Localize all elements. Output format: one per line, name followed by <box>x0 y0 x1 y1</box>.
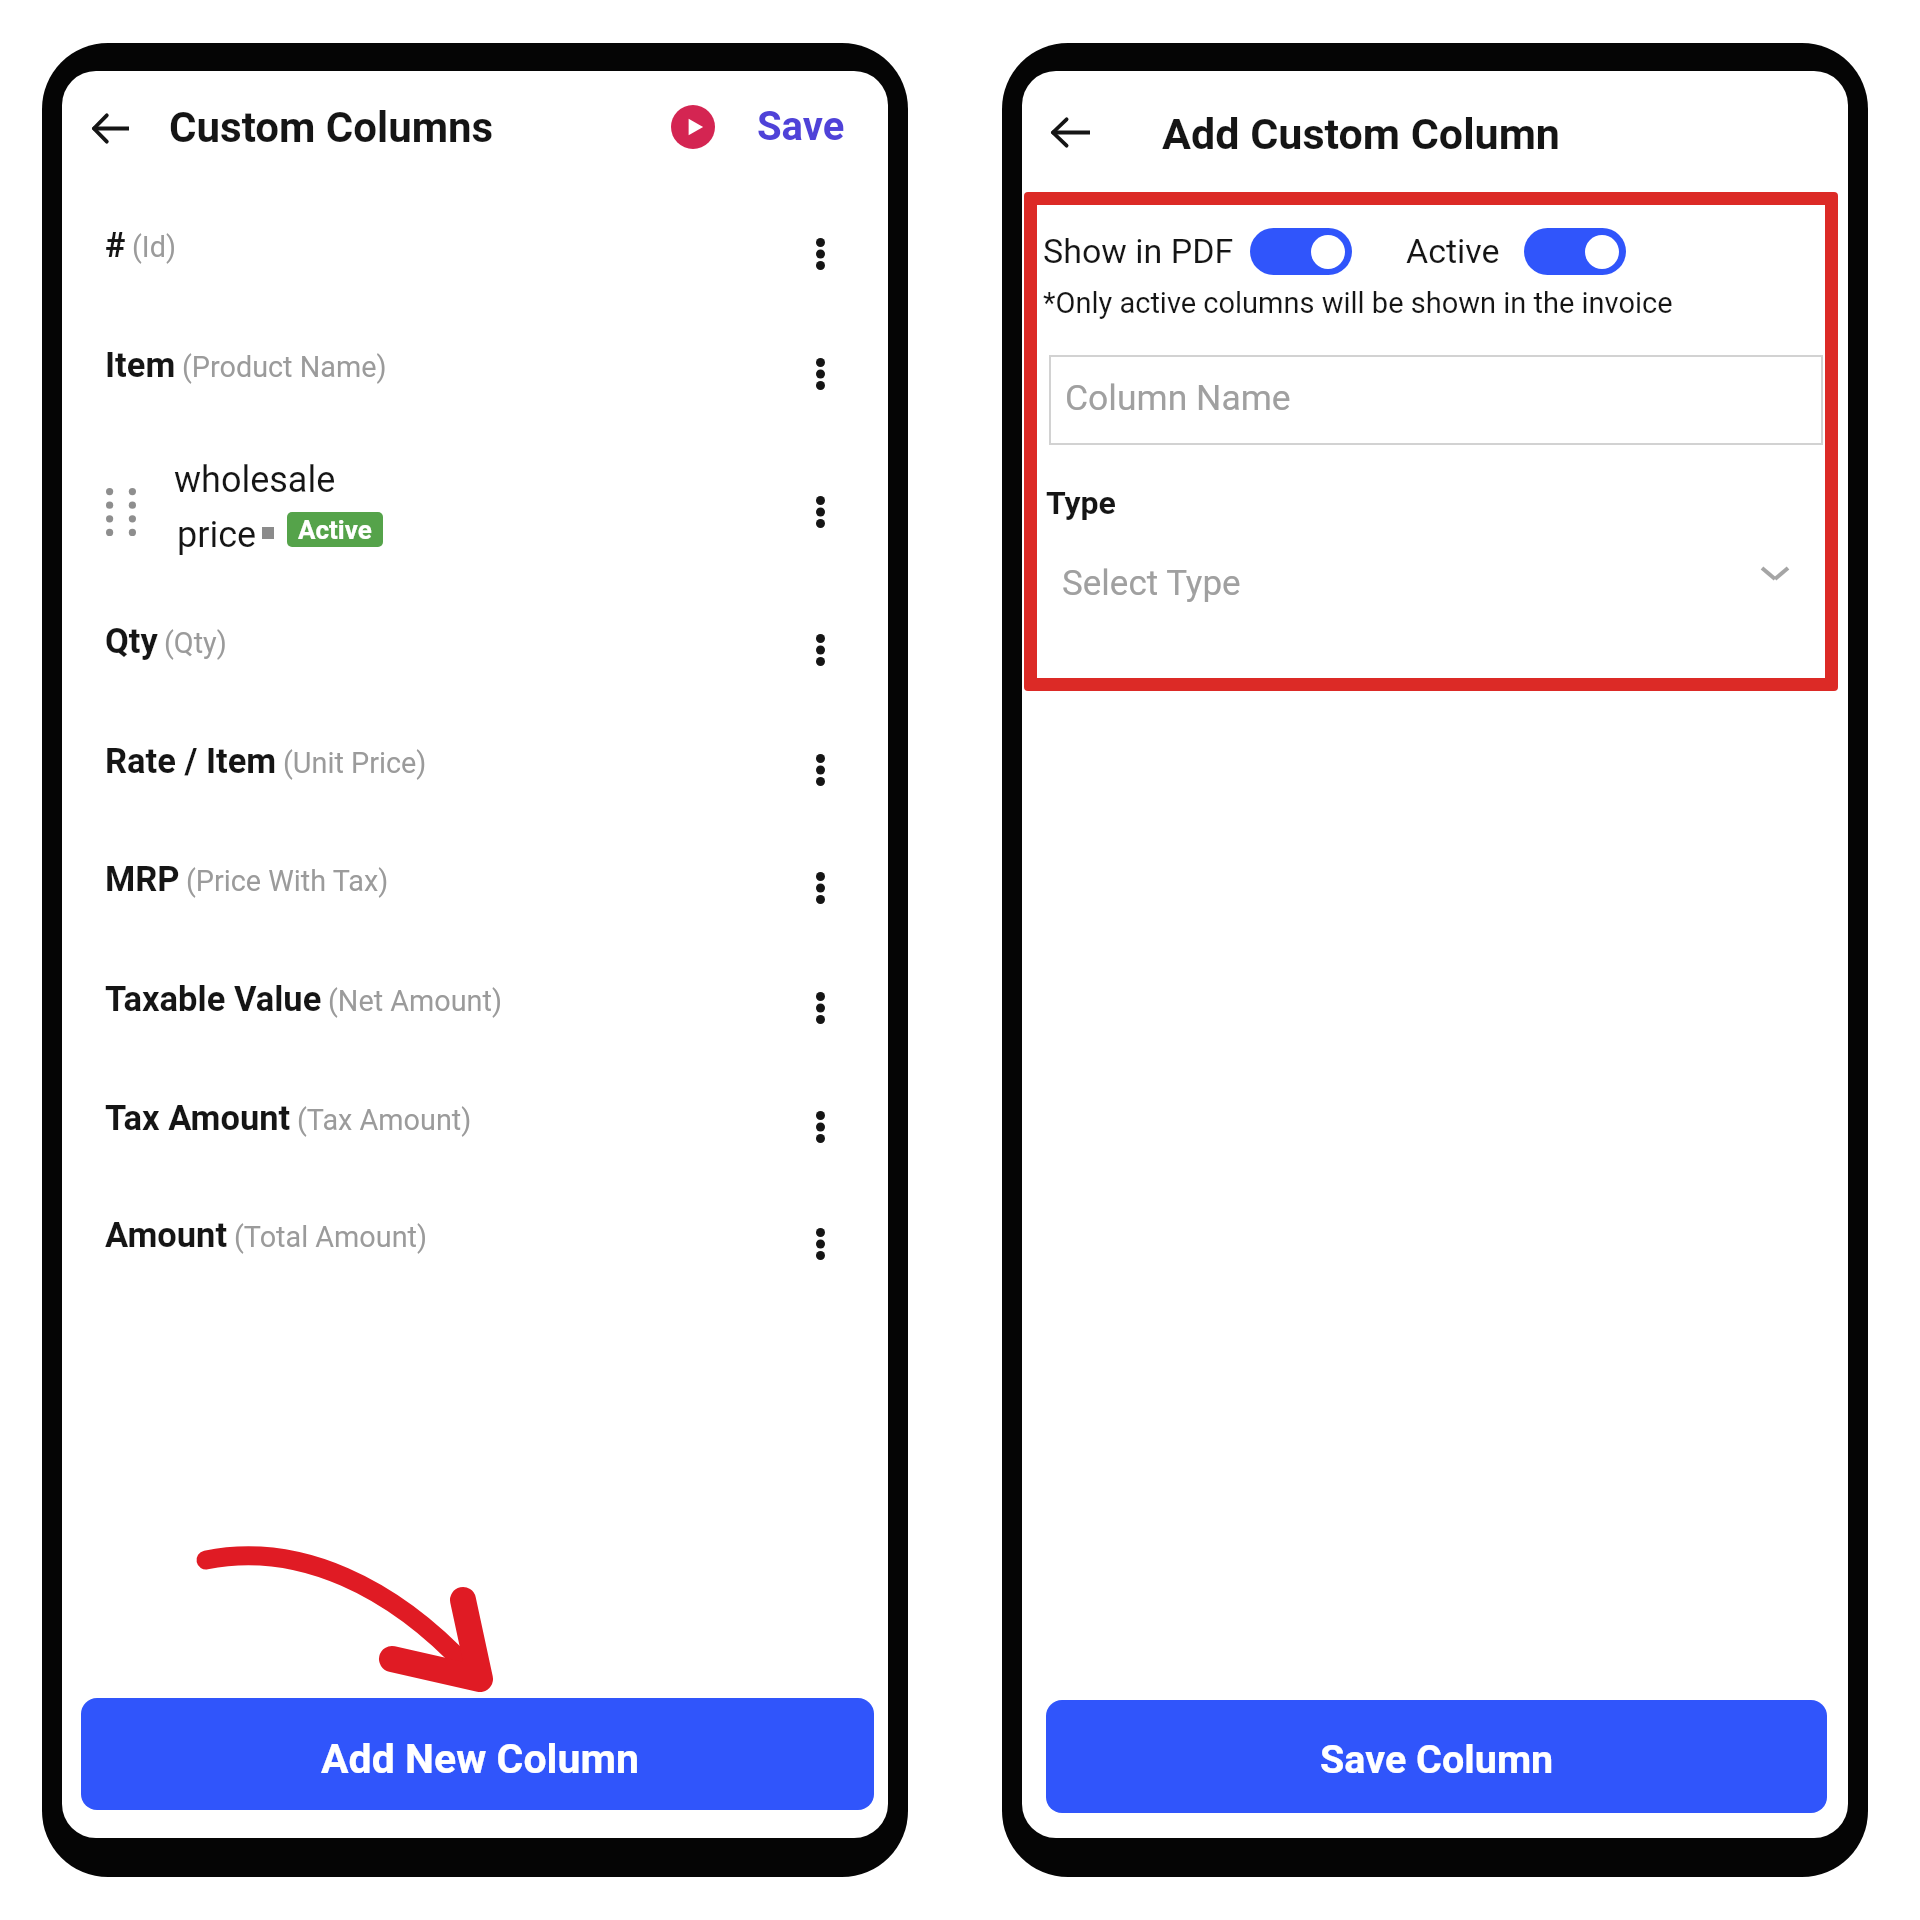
button[interactable]: More options <box>794 218 846 290</box>
button[interactable]: Add New Column <box>81 1698 874 1810</box>
staticText: (Net Amount) <box>328 984 502 1018</box>
button[interactable]: Reorder column <box>62 450 888 570</box>
button[interactable]: More options <box>794 1091 846 1163</box>
button[interactable]: Show in PDF toggle <box>1250 228 1352 275</box>
staticText: Rate / Item <box>105 741 277 781</box>
button[interactable]: Active toggle <box>1524 228 1626 275</box>
staticText: wholesale <box>174 459 336 501</box>
staticText: (Tax Amount) <box>297 1103 472 1137</box>
button[interactable]: Select Type <box>1024 537 1838 607</box>
button[interactable]: Back <box>92 112 129 145</box>
button[interactable]: MRP <box>62 836 888 932</box>
staticText: (Product Name) <box>182 350 387 384</box>
staticText: Save Column <box>1320 1736 1554 1782</box>
staticText: (Qty) <box>164 626 227 660</box>
staticText: *Only active columns will be shown in th… <box>1043 286 1673 320</box>
staticText: Tax Amount <box>105 1098 291 1138</box>
staticText: Custom Columns <box>169 103 494 152</box>
button[interactable]: Back <box>1051 116 1090 149</box>
staticText: Item <box>105 345 176 385</box>
button[interactable]: Save <box>746 86 851 156</box>
button[interactable]: More options <box>794 338 846 410</box>
staticText: (Unit Price) <box>283 746 427 780</box>
button[interactable]: More options <box>794 852 846 924</box>
button[interactable]: Column Name <box>1049 355 1823 445</box>
button[interactable]: Tax Amount <box>62 1075 888 1171</box>
button[interactable]: Amount <box>62 1192 888 1288</box>
staticText: Type <box>1046 484 1116 522</box>
staticText: Add New Column <box>321 1735 639 1783</box>
button[interactable]: More options <box>794 614 846 686</box>
other: Expand type list <box>1762 568 1788 579</box>
staticText: price <box>177 514 257 556</box>
staticText: Qty <box>105 621 158 661</box>
staticText: (Total Amount) <box>234 1220 427 1254</box>
staticText: (Price With Tax) <box>186 864 389 898</box>
staticText: Active <box>298 515 372 545</box>
staticText: Add Custom Column <box>1162 109 1560 159</box>
button[interactable]: Reorder column <box>92 476 150 548</box>
button[interactable]: Rate / Item <box>62 718 888 814</box>
button[interactable]: Item <box>62 322 888 418</box>
button[interactable]: More options <box>794 734 846 806</box>
button[interactable]: Watch tutorial <box>671 105 715 149</box>
staticText: # <box>105 225 126 265</box>
staticText: Save <box>757 103 845 150</box>
button[interactable]: More options <box>794 476 846 548</box>
button[interactable]: Qty <box>62 598 888 694</box>
staticText: Column Name <box>1065 377 1291 419</box>
staticText: Active <box>1406 231 1500 271</box>
button[interactable]: More options <box>794 1208 846 1280</box>
staticText: Taxable Value <box>105 979 322 1019</box>
button[interactable]: Taxable Value <box>62 956 888 1052</box>
staticText: Show in PDF <box>1043 231 1234 271</box>
button[interactable]: More options <box>794 972 846 1044</box>
button[interactable]: # <box>62 202 888 298</box>
button[interactable]: Save Column <box>1046 1700 1827 1813</box>
staticText: MRP <box>105 859 180 899</box>
staticText: Amount <box>105 1215 228 1255</box>
staticText: (Id) <box>132 230 176 264</box>
staticText: Select Type <box>1062 563 1241 604</box>
